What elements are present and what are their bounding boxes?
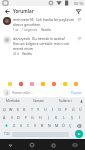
button[interactable]: O — [56, 106, 63, 113]
button[interactable]: L — [60, 114, 68, 121]
button[interactable]: C — [25, 122, 32, 129]
button[interactable]: 1 sa — [13, 28, 19, 32]
staticText: Ç — [69, 123, 72, 128]
staticText: N — [48, 123, 51, 128]
button[interactable]: B — [39, 122, 46, 129]
button[interactable]: K — [52, 114, 60, 121]
button[interactable]: 42 d — [13, 52, 19, 56]
staticText: S — [11, 115, 13, 120]
staticText: mehmetrr95 Cok harika bir paylasim olmus… — [13, 17, 76, 27]
staticText: Q — [3, 107, 6, 112]
button[interactable]: N — [46, 122, 53, 129]
button[interactable]: Emoji — [17, 80, 24, 87]
button[interactable]: V — [32, 122, 39, 129]
button[interactable]: Ana ekran — [28, 141, 36, 149]
button[interactable]: J — [44, 114, 52, 121]
staticText: Merhaba — [6, 99, 20, 103]
button[interactable]: H — [36, 114, 44, 121]
staticText: L — [63, 115, 65, 120]
staticText: İ — [79, 115, 81, 120]
button[interactable]: Sayilar — [2, 130, 11, 138]
staticText: E — [17, 107, 19, 112]
button[interactable]: Tamam — [26, 97, 52, 105]
staticText: V — [34, 123, 37, 128]
button[interactable]: Emoji — [6, 80, 13, 87]
staticText: denizyesilr Bu nerede ki acaba? Konum bi… — [13, 36, 76, 51]
button[interactable]: 1 begenme — [22, 28, 38, 32]
staticText: M — [55, 123, 59, 128]
staticText: Z — [13, 123, 16, 128]
button[interactable]: Yorum ekle... — [0, 87, 85, 97]
button[interactable]: Yanitla — [41, 28, 51, 32]
button[interactable]: Ş — [68, 114, 76, 121]
button[interactable]: İ — [76, 114, 84, 121]
button[interactable]: Mikrofon — [78, 97, 85, 105]
button[interactable]: Gonder — [74, 7, 82, 15]
staticText: A — [3, 115, 6, 120]
button[interactable]: Z — [11, 122, 18, 129]
button[interactable]: Emoji — [28, 80, 35, 87]
button[interactable]: Yanitla — [22, 52, 32, 56]
button[interactable]: Son uygulamalar — [49, 141, 57, 149]
button[interactable]: I — [49, 106, 56, 113]
button[interactable]: Q — [1, 106, 7, 113]
staticText: J — [48, 115, 49, 120]
button[interactable]: Klavye — [71, 141, 79, 149]
button[interactable]: Ğ — [70, 106, 77, 113]
button[interactable]: T — [28, 106, 35, 113]
button[interactable]: W — [7, 106, 14, 113]
button[interactable]: A — [1, 114, 8, 121]
button[interactable]: mehmetrr95 Cok harika bir paylasim olmus… — [0, 15, 85, 34]
button[interactable]: R — [21, 106, 28, 113]
button[interactable]: X — [18, 122, 25, 129]
button[interactable]: S — [8, 114, 15, 121]
button[interactable]: Gonder — [75, 130, 83, 138]
button[interactable]: Ö — [60, 122, 67, 129]
staticText: R — [23, 107, 26, 112]
staticText: I — [52, 107, 54, 112]
button[interactable]: Emoji — [39, 80, 46, 87]
button[interactable]: denizyesilr Bu nerede ki acaba? Konum bi… — [0, 34, 85, 58]
button[interactable]: Emoji — [61, 80, 68, 87]
button[interactable]: D — [15, 114, 22, 121]
button[interactable]: Y — [35, 106, 42, 113]
button[interactable]: Merhaba — [0, 97, 26, 105]
button[interactable]: Emoji — [72, 80, 79, 87]
button[interactable]: Paylas — [71, 90, 82, 95]
staticText: F — [25, 115, 27, 120]
button[interactable]: E — [14, 106, 21, 113]
button[interactable]: Sil — [74, 122, 84, 129]
button[interactable]: Emoji — [50, 80, 57, 87]
button[interactable]: Begen — [77, 17, 82, 22]
staticText: U — [44, 107, 47, 112]
staticText: G — [31, 115, 34, 120]
staticText: Ğ — [72, 107, 75, 112]
staticText: C — [27, 123, 30, 128]
button[interactable]: Kullanici — [52, 97, 78, 105]
staticText: Kullanici — [59, 99, 72, 103]
staticText: D — [17, 115, 20, 120]
button[interactable]: P — [63, 106, 70, 113]
button[interactable]: M — [53, 122, 60, 129]
button[interactable]: Shift — [1, 122, 11, 129]
staticText: Yorum ekle... — [12, 90, 71, 95]
staticText: ?123 — [4, 132, 10, 136]
staticText: H — [39, 115, 42, 120]
button[interactable]: Begen — [77, 36, 82, 41]
staticText: Ü — [79, 107, 82, 112]
staticText: Y — [37, 107, 40, 112]
button[interactable]: Ç — [67, 122, 74, 129]
button[interactable]: Geri — [6, 141, 14, 149]
staticText: Tamam — [33, 99, 45, 103]
button[interactable]: F — [22, 114, 29, 121]
staticText: X — [20, 123, 23, 128]
staticText: T — [31, 107, 33, 112]
button[interactable]: U — [42, 106, 49, 113]
button[interactable]: G — [29, 114, 36, 121]
button[interactable]: Ü — [77, 106, 84, 113]
button[interactable]: Geri — [3, 7, 11, 15]
staticText: Ş — [71, 115, 73, 120]
staticText: K — [55, 115, 58, 120]
button[interactable]: Nokta — [70, 130, 75, 138]
